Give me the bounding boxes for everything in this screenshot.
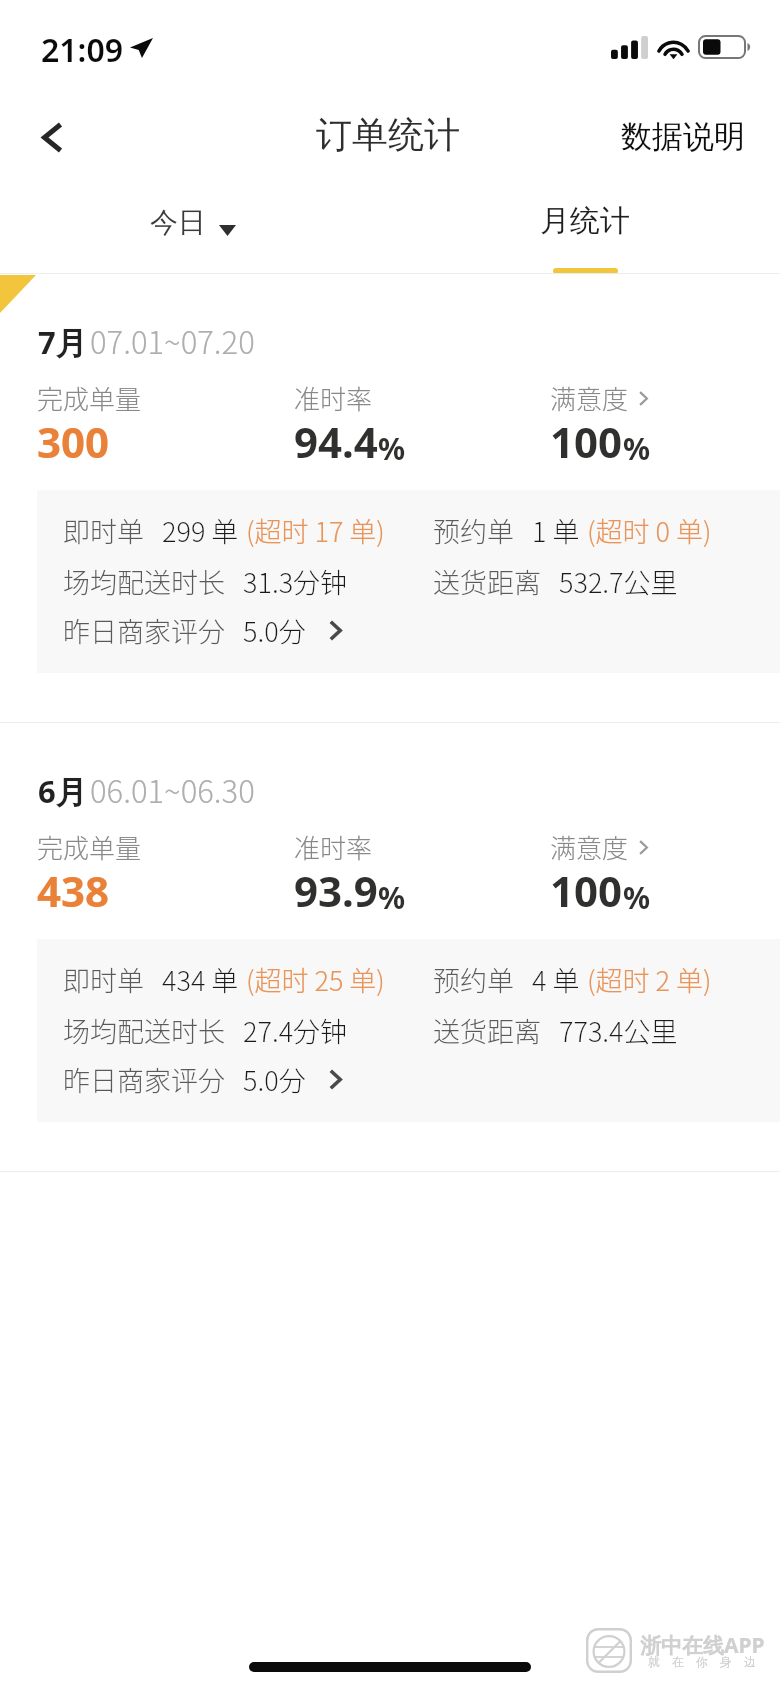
- staticText: 就在你身边: [642, 1654, 762, 1669]
- staticText: 月统计: [540, 202, 630, 240]
- button[interactable]: 今日: [137, 200, 247, 248]
- staticText: 场均配送时长: [63, 1011, 225, 1050]
- staticText: 昨日商家评分: [63, 611, 225, 650]
- staticText: 1 单: [532, 511, 580, 550]
- staticText: 07.01~07.20: [90, 318, 255, 363]
- staticText: 5.0分: [243, 1060, 306, 1099]
- staticText: 今日: [150, 205, 206, 240]
- staticText: 299 单: [162, 511, 239, 550]
- button[interactable]: 昨日商家评分: [63, 611, 342, 650]
- staticText: 准时率: [294, 379, 373, 417]
- staticText: 送货距离: [433, 562, 541, 601]
- staticText: %: [623, 877, 651, 918]
- staticText: %: [623, 428, 651, 469]
- staticText: 预约单: [433, 960, 514, 999]
- staticText: 完成单量: [37, 379, 142, 417]
- staticText: 438: [37, 862, 110, 919]
- staticText: 27.4分钟: [243, 1011, 348, 1050]
- staticText: 31.3分钟: [243, 562, 348, 601]
- staticText: 100: [550, 862, 623, 919]
- staticText: 5.0分: [243, 611, 306, 650]
- button[interactable]: 数据说明: [621, 117, 745, 156]
- staticText: 预约单: [433, 511, 514, 550]
- staticText: 场均配送时长: [63, 562, 225, 601]
- staticText: 订单统计: [316, 112, 460, 157]
- staticText: %: [378, 428, 406, 469]
- staticText: 4 单: [532, 960, 580, 999]
- staticText: 773.4公里: [559, 1011, 678, 1050]
- staticText: 准时率: [294, 828, 373, 866]
- staticText: 满意度: [550, 828, 629, 866]
- button[interactable]: Details: [639, 391, 648, 406]
- button[interactable]: Details: [639, 840, 648, 855]
- staticText: 434 单: [162, 960, 239, 999]
- staticText: 浙中在线APP: [640, 1631, 765, 1660]
- staticText: 数据说明: [621, 117, 745, 156]
- staticText: (超时 0 单): [587, 511, 712, 550]
- button[interactable]: 昨日商家评分: [63, 1060, 342, 1099]
- staticText: 满意度: [550, 379, 629, 417]
- staticText: (超时 17 单): [246, 511, 385, 550]
- staticText: 93.9: [294, 862, 378, 919]
- staticText: 94.4: [294, 413, 378, 470]
- staticText: (超时 25 单): [246, 960, 385, 999]
- staticText: 即时单: [63, 511, 144, 550]
- staticText: 300: [37, 413, 110, 470]
- staticText: (超时 2 单): [587, 960, 712, 999]
- staticText: 7月: [38, 321, 87, 363]
- staticText: 21:09: [41, 28, 124, 72]
- staticText: 即时单: [63, 960, 144, 999]
- staticText: 送货距离: [433, 1011, 541, 1050]
- staticText: 532.7公里: [559, 562, 678, 601]
- staticText: %: [378, 877, 406, 918]
- staticText: 昨日商家评分: [63, 1060, 225, 1099]
- button[interactable]: Back: [22, 107, 82, 167]
- staticText: 100: [550, 413, 623, 470]
- staticText: 6月: [38, 770, 87, 812]
- staticText: 完成单量: [37, 828, 142, 866]
- button[interactable]: 月统计: [520, 202, 650, 274]
- staticText: 06.01~06.30: [90, 767, 255, 812]
